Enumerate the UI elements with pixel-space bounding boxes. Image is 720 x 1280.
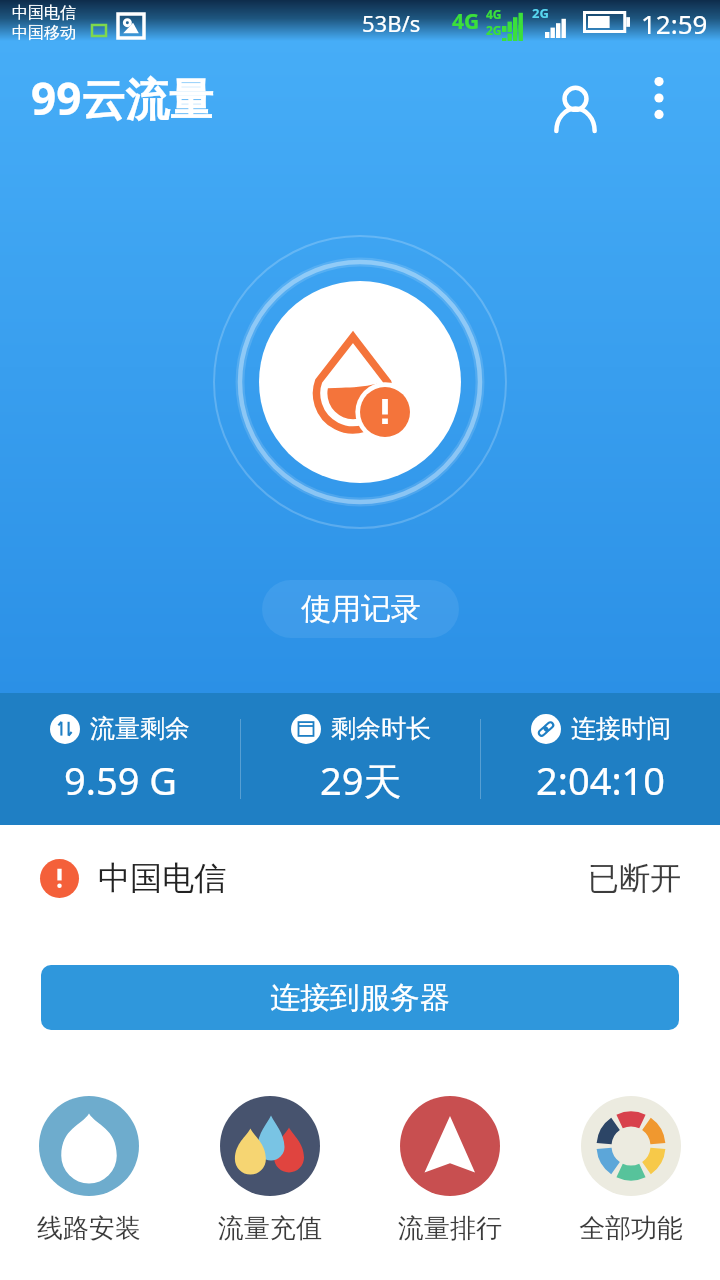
staticText: 流量充值: [218, 1212, 322, 1245]
staticText: 2G: [532, 4, 549, 22]
staticText: 99云流量: [31, 68, 214, 128]
staticText: 连接时间: [571, 713, 671, 744]
staticText: 流量剩余: [90, 713, 190, 744]
button[interactable]: 连接到服务器: [41, 965, 679, 1030]
staticText: 连接到服务器: [270, 979, 450, 1017]
staticText: 中国电信: [98, 858, 226, 898]
button[interactable]: 中国电信: [0, 825, 720, 931]
staticText: 4G: [452, 7, 480, 36]
staticText: 53B/s: [362, 8, 421, 38]
button[interactable]: 线路安装: [19, 1096, 159, 1245]
button[interactable]: 全部功能: [561, 1096, 701, 1245]
button[interactable]: 流量充值: [200, 1096, 340, 1245]
button[interactable]: Account: [539, 72, 611, 144]
staticText: 29天: [320, 754, 402, 806]
staticText: 2:04:10: [536, 754, 666, 806]
staticText: 12:59: [641, 6, 708, 41]
button[interactable]: Connection status: [210, 232, 510, 532]
staticText: 中国移动: [12, 23, 76, 41]
staticText: 线路安装: [37, 1212, 141, 1245]
staticText: 2G: [486, 22, 502, 38]
staticText: 流量排行: [398, 1212, 502, 1245]
button[interactable]: More options: [627, 66, 691, 130]
staticText: 使用记录: [301, 590, 421, 628]
button[interactable]: 流量排行: [380, 1096, 520, 1245]
staticText: 4G: [486, 6, 502, 22]
staticText: 全部功能: [579, 1212, 683, 1245]
staticText: 已断开: [588, 859, 681, 898]
button[interactable]: 使用记录: [262, 580, 459, 638]
staticText: 9.59 G: [64, 754, 177, 806]
staticText: 剩余时长: [331, 713, 431, 744]
staticText: 中国电信: [12, 3, 76, 23]
